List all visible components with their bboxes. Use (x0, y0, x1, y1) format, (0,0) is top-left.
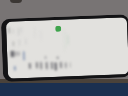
button[interactable]: Verified (55, 26, 61, 32)
